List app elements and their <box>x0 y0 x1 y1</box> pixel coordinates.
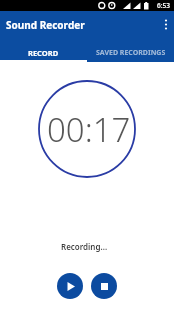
staticText: SAVED RECORDINGS <box>96 48 166 58</box>
staticText: Sound Recorder <box>6 18 85 32</box>
staticText: RECORD <box>28 48 59 58</box>
staticText: 00:17 <box>47 107 131 152</box>
staticText: 6:53 <box>157 1 170 10</box>
button[interactable] <box>57 273 83 299</box>
button[interactable] <box>91 273 117 299</box>
staticText: Recording... <box>61 241 108 252</box>
button[interactable]: RECORD <box>0 38 87 62</box>
button[interactable]: SAVED RECORDINGS <box>87 38 174 62</box>
button[interactable] <box>158 17 174 33</box>
